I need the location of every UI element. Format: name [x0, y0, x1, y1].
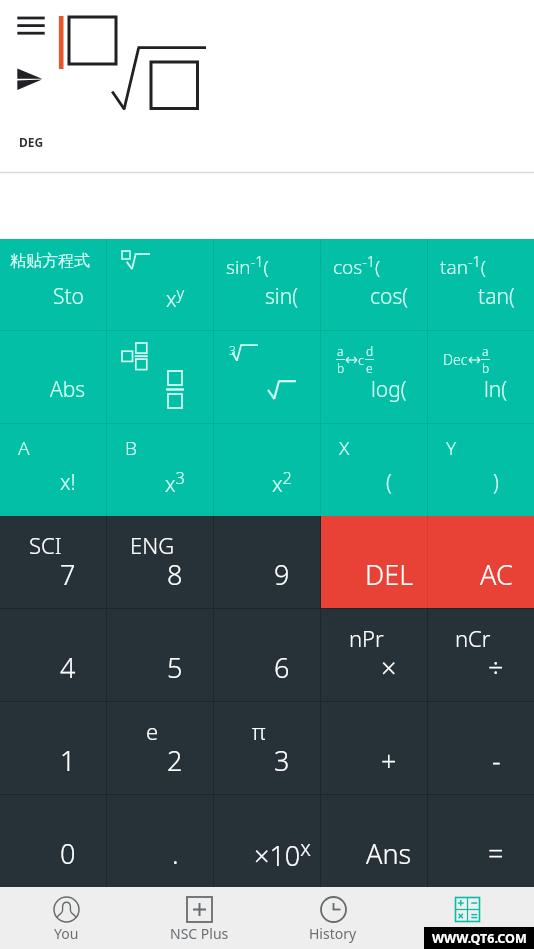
staticText: tan( [478, 282, 515, 311]
staticText: b [337, 360, 345, 376]
button[interactable]: sin-1( [214, 239, 320, 330]
staticText: x2 [272, 466, 292, 498]
staticText: SCI [29, 530, 62, 560]
staticText: NSC Plus [170, 924, 229, 943]
button[interactable]: nCr [428, 609, 534, 701]
staticText: tan-1( [440, 252, 487, 280]
staticText: a [337, 343, 344, 359]
staticText: AC [480, 556, 513, 593]
button[interactable]: 粘贴方程式 [0, 239, 106, 330]
button[interactable]: ×10x [214, 795, 320, 887]
button[interactable]: - [428, 702, 534, 794]
staticText: ) [493, 468, 499, 497]
button[interactable]: AC [428, 516, 534, 608]
button[interactable]: Dec [428, 331, 534, 423]
button[interactable]: SCI [0, 516, 106, 608]
staticText: Ans [366, 835, 412, 872]
button[interactable]: 0 [0, 795, 106, 887]
staticText: ×10x [254, 833, 311, 874]
button[interactable]: nPr [321, 609, 427, 701]
staticText: 9 [274, 556, 290, 593]
staticText: Abs [50, 375, 86, 404]
staticText: x! [60, 468, 76, 497]
button[interactable]: = [428, 795, 534, 887]
staticText: nPr [349, 623, 384, 653]
button[interactable]: History [266, 887, 400, 949]
staticText: X [339, 435, 350, 461]
button[interactable]: x2 [214, 424, 320, 516]
staticText: ( [386, 468, 392, 497]
staticText: xy [166, 281, 185, 313]
button[interactable]: xy [107, 239, 213, 330]
button[interactable]: 1 [0, 702, 106, 794]
staticText: DEL [365, 556, 414, 593]
staticText: e [366, 360, 373, 376]
staticText: 3 [274, 742, 290, 779]
staticText: ln( [484, 375, 508, 404]
staticText: cos-1( [333, 252, 381, 280]
button[interactable]: π [214, 702, 320, 794]
staticText: 3 [229, 342, 236, 358]
staticText: Sto [53, 282, 84, 311]
button[interactable]: + [321, 702, 427, 794]
staticText: 0 [60, 835, 76, 872]
button[interactable]: X [321, 424, 427, 516]
staticText: a [482, 343, 489, 359]
button[interactable]: a [321, 331, 427, 423]
staticText: ENG [130, 530, 175, 560]
button[interactable]: You [0, 887, 133, 949]
staticText: DEG [19, 134, 44, 150]
staticText: = [488, 835, 504, 872]
staticText: 2 [167, 742, 183, 779]
staticText: . [172, 835, 179, 872]
button[interactable]: 4 [0, 609, 106, 701]
button[interactable]: Y [428, 424, 534, 516]
staticText: - [492, 742, 501, 779]
button[interactable]: Ans [321, 795, 427, 887]
staticText: 5 [167, 649, 183, 686]
staticText: 6 [274, 649, 290, 686]
staticText: sin-1( [226, 252, 269, 280]
staticText: B [125, 435, 137, 461]
staticText: You [54, 924, 79, 943]
button[interactable]: Abs [0, 331, 106, 423]
staticText: Dec [443, 350, 468, 369]
staticText: 8 [167, 556, 183, 593]
button[interactable]: 6 [214, 609, 320, 701]
button[interactable]: NSC Plus [133, 887, 266, 949]
staticText: × [381, 649, 397, 686]
staticText: 4 [60, 649, 76, 686]
staticText: 1 [60, 742, 76, 779]
button[interactable] [107, 331, 213, 423]
staticText: Y [446, 435, 457, 461]
staticText: 7 [60, 556, 76, 593]
staticText: e [146, 716, 159, 746]
staticText: sin( [265, 282, 299, 311]
button[interactable]: A [0, 424, 106, 516]
button[interactable]: Calculator [400, 887, 534, 949]
staticText: + [381, 742, 397, 779]
staticText: nCr [455, 623, 491, 653]
staticText: c [358, 351, 365, 369]
staticText: d [366, 343, 374, 359]
button[interactable]: B [107, 424, 213, 516]
button[interactable]: 3 [214, 331, 320, 423]
staticText: 粘贴方程式 [10, 251, 90, 271]
staticText: b [482, 360, 490, 376]
staticText: cos( [370, 282, 409, 311]
staticText: WWW.QT6.COM [432, 930, 527, 947]
button[interactable]: cos-1( [321, 239, 427, 330]
button[interactable]: 9 [214, 516, 320, 608]
staticText: x3 [165, 466, 185, 498]
button[interactable]: . [107, 795, 213, 887]
staticText: log( [371, 375, 407, 404]
button[interactable]: tan-1( [428, 239, 534, 330]
staticText: History [309, 924, 357, 943]
staticText: ÷ [488, 649, 504, 686]
button[interactable]: DEL [321, 516, 427, 608]
button[interactable]: ENG [107, 516, 213, 608]
staticText: π [252, 716, 266, 746]
staticText: A [18, 435, 30, 461]
button[interactable]: e [107, 702, 213, 794]
button[interactable]: 5 [107, 609, 213, 701]
